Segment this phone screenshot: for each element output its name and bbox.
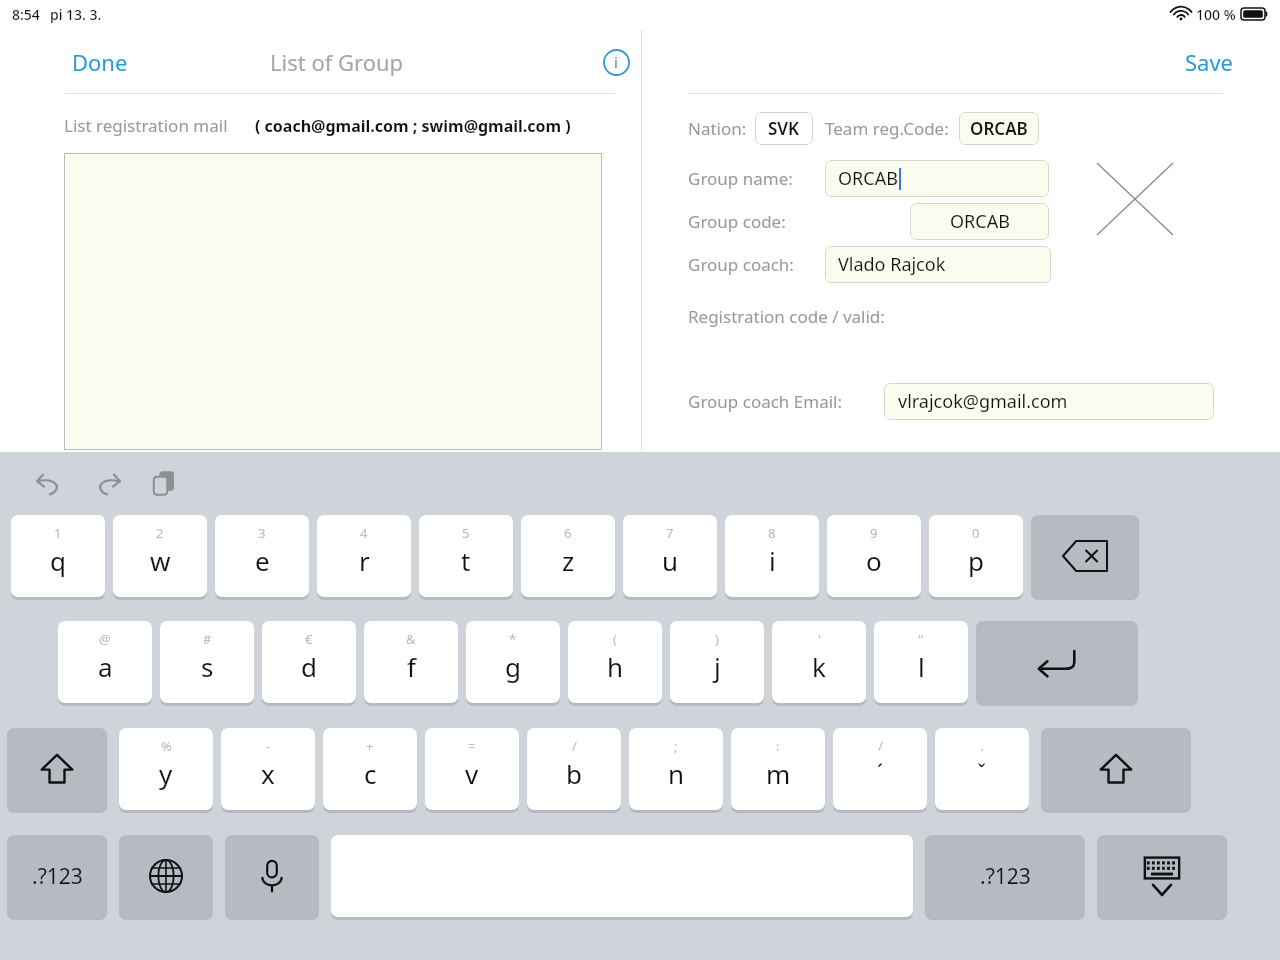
staticText: ˇ xyxy=(977,756,987,786)
button[interactable]: 1 xyxy=(11,514,105,598)
staticText: pi 13. 3. xyxy=(50,5,102,24)
button[interactable]: € xyxy=(262,620,356,704)
button[interactable]: Return xyxy=(976,620,1138,704)
staticText: @ xyxy=(99,630,111,648)
staticText: a xyxy=(98,649,113,684)
button[interactable]: 0 xyxy=(929,514,1023,598)
staticText: / xyxy=(572,737,577,755)
button[interactable]: Close xyxy=(1097,163,1173,235)
button[interactable]: Done xyxy=(68,43,132,81)
button[interactable]: # xyxy=(160,620,254,704)
staticText: Registration code / valid: xyxy=(688,305,885,328)
button[interactable]: 3 xyxy=(215,514,309,598)
staticText: ' xyxy=(818,630,821,648)
staticText: % xyxy=(161,737,172,755)
staticText: * xyxy=(509,630,517,648)
button[interactable]: - xyxy=(221,727,315,811)
button[interactable]: Redo xyxy=(83,459,131,507)
button[interactable]: Dictate xyxy=(225,834,319,918)
button[interactable]: ( xyxy=(568,620,662,704)
button[interactable]: & xyxy=(364,620,458,704)
button[interactable]: Save xyxy=(1181,43,1238,81)
staticText: - xyxy=(266,737,271,755)
staticText: ´ xyxy=(877,756,884,786)
staticText: h xyxy=(607,649,624,684)
staticText: ; xyxy=(674,737,678,755)
button[interactable]: Space xyxy=(331,834,913,918)
button[interactable]: ORCAB xyxy=(959,112,1039,145)
staticText: 3 xyxy=(258,524,266,542)
staticText: 7 xyxy=(666,524,674,542)
staticText: .?123 xyxy=(32,862,83,891)
staticText: f xyxy=(407,649,416,684)
button[interactable]: + xyxy=(323,727,417,811)
staticText: 8 xyxy=(768,524,776,542)
button[interactable]: ; xyxy=(629,727,723,811)
staticText: vlrajcok@gmail.com xyxy=(898,389,1068,414)
staticText: 0 xyxy=(972,524,980,542)
button[interactable]: .?123 xyxy=(7,834,107,918)
button[interactable]: 8 xyxy=(725,514,819,598)
button[interactable]: .?123 xyxy=(925,834,1085,918)
button[interactable]: ORCAB xyxy=(825,160,1049,197)
button[interactable]: Paste xyxy=(141,459,189,507)
staticText: r xyxy=(359,543,370,578)
staticText: ( xyxy=(613,630,617,648)
staticText: 1 xyxy=(54,524,62,542)
staticText: j xyxy=(714,649,721,684)
button[interactable]: ) xyxy=(670,620,764,704)
button[interactable]: / xyxy=(527,727,621,811)
button[interactable]: / xyxy=(833,727,927,811)
button[interactable]: : xyxy=(731,727,825,811)
button[interactable]: % xyxy=(119,727,213,811)
button[interactable]: = xyxy=(425,727,519,811)
button[interactable]: Undo xyxy=(26,459,74,507)
staticText: y xyxy=(159,756,173,791)
staticText: Group code: xyxy=(688,210,786,233)
button[interactable]: @ xyxy=(58,620,152,704)
staticText: n xyxy=(668,756,685,791)
button[interactable]: 4 xyxy=(317,514,411,598)
button[interactable]: 5 xyxy=(419,514,513,598)
button[interactable]: * xyxy=(466,620,560,704)
staticText: 8:54 xyxy=(12,5,40,24)
staticText: € xyxy=(305,630,313,648)
button[interactable]: 6 xyxy=(521,514,615,598)
staticText: Done xyxy=(72,47,128,77)
staticText: Vlado Rajcok xyxy=(838,252,946,277)
staticText: 100 % xyxy=(1196,5,1236,24)
button[interactable]: SVK xyxy=(755,112,813,145)
staticText: i xyxy=(769,543,776,578)
button[interactable]: Vlado Rajcok xyxy=(825,246,1051,283)
button[interactable]: " xyxy=(874,620,968,704)
staticText: Team reg.Code: xyxy=(825,117,949,140)
button[interactable]: vlrajcok@gmail.com xyxy=(884,383,1214,420)
button[interactable]: Shift xyxy=(7,727,107,811)
button[interactable]: Backspace xyxy=(1031,514,1139,598)
staticText: ORCAB xyxy=(950,209,1010,234)
button[interactable]: 9 xyxy=(827,514,921,598)
staticText: = xyxy=(468,737,476,755)
button[interactable] xyxy=(64,153,602,450)
staticText: b xyxy=(566,756,582,791)
staticText: p xyxy=(968,543,984,578)
button[interactable]: Info xyxy=(599,45,633,79)
staticText: u xyxy=(662,543,679,578)
button[interactable]: Hide keyboard xyxy=(1097,834,1227,918)
button[interactable]: ' xyxy=(772,620,866,704)
staticText: Group coach: xyxy=(688,253,794,276)
staticText: 6 xyxy=(564,524,572,542)
staticText: z xyxy=(562,543,575,578)
button[interactable]: 2 xyxy=(113,514,207,598)
staticText: g xyxy=(505,649,521,684)
button[interactable]: . xyxy=(935,727,1029,811)
button[interactable]: Shift xyxy=(1041,727,1191,811)
button[interactable]: 7 xyxy=(623,514,717,598)
staticText: SVK xyxy=(768,117,800,140)
staticText: 9 xyxy=(870,524,878,542)
button[interactable]: Switch language xyxy=(119,834,213,918)
staticText: t xyxy=(461,543,471,578)
staticText: c xyxy=(364,756,377,791)
staticText: 4 xyxy=(360,524,368,542)
button[interactable]: ORCAB xyxy=(910,203,1049,240)
